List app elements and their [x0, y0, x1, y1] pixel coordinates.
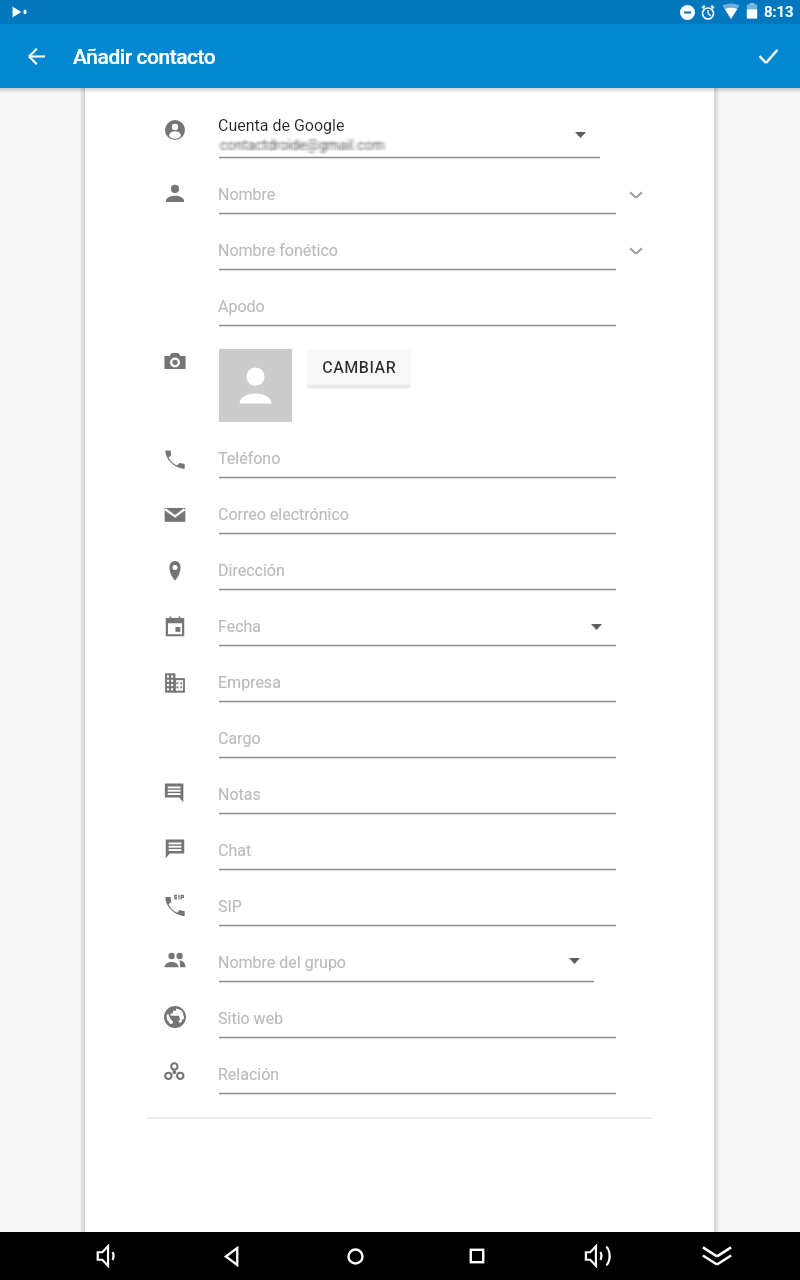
button[interactable]: Save contact — [744, 32, 792, 80]
button[interactable]: Back — [12, 32, 60, 80]
other: Account — [164, 119, 186, 141]
staticText: contactdroide@gmail.com — [220, 137, 385, 153]
staticText: contactdroide@gmail.com — [222, 138, 387, 154]
staticText: CAMBIAR — [322, 358, 396, 377]
staticText: contactdroide@gmail.com — [221, 138, 386, 154]
staticText: Nombre del grupo — [218, 953, 346, 972]
staticText: Nombre fonético — [218, 241, 338, 260]
button[interactable]: Home — [331, 1232, 379, 1280]
staticText: Relación — [218, 1065, 280, 1084]
staticText: Teléfono — [218, 449, 281, 468]
staticText: contactdroide@gmail.com — [220, 138, 385, 154]
staticText: Añadir contacto — [73, 45, 216, 70]
staticText: Cuenta de Google — [218, 116, 345, 135]
staticText: contactdroide@gmail.com — [222, 137, 387, 153]
staticText: contactdroide@gmail.com — [221, 137, 386, 153]
staticText: contactdroide@gmail.com — [217, 137, 382, 153]
staticText: contactdroide@gmail.com — [218, 136, 383, 152]
staticText: contactdroide@gmail.com — [218, 137, 383, 153]
staticText: Sitio web — [218, 1009, 284, 1028]
other: Phone — [164, 448, 186, 470]
other: Notes — [164, 782, 186, 804]
staticText: contactdroide@gmail.com — [218, 138, 383, 154]
staticText: contactdroide@gmail.com — [219, 137, 384, 153]
other: Name — [164, 183, 186, 205]
staticText: Notas — [218, 785, 261, 804]
button[interactable]: Volume up — [575, 1232, 623, 1280]
staticText: contactdroide@gmail.com — [223, 137, 388, 153]
staticText: Chat — [218, 841, 252, 860]
button[interactable]: Volume down — [85, 1232, 133, 1280]
staticText: contactdroide@gmail.com — [220, 138, 385, 154]
staticText: contactdroide@gmail.com — [219, 138, 384, 154]
other: Website — [164, 1006, 186, 1028]
button[interactable]: Contact photo — [219, 349, 292, 422]
button[interactable]: Recent apps — [453, 1232, 501, 1280]
other: Group — [164, 950, 186, 972]
other: Photo — [164, 350, 186, 372]
staticText: Nombre — [218, 185, 276, 204]
staticText: Correo electrónico — [218, 505, 349, 524]
staticText: Dirección — [218, 561, 285, 580]
other: Address — [164, 560, 186, 582]
button[interactable]: Hide navigation bar — [693, 1232, 741, 1280]
other: Relationship — [164, 1062, 186, 1084]
staticText: Fecha — [218, 617, 262, 636]
button[interactable]: CAMBIAR — [306, 349, 411, 385]
staticText: Cargo — [218, 729, 261, 748]
staticText: contactdroide@gmail.com — [222, 136, 387, 152]
other: Email — [164, 504, 186, 526]
staticText: SIP — [218, 897, 242, 916]
staticText: 8:13 — [764, 3, 794, 21]
other: Chat — [164, 838, 186, 860]
other: SIP — [164, 894, 186, 916]
staticText: Empresa — [218, 673, 281, 692]
staticText: Apodo — [218, 297, 265, 316]
staticText: contactdroide@gmail.com — [219, 136, 384, 152]
staticText: contactdroide@gmail.com — [221, 136, 386, 152]
other: Date — [164, 616, 186, 638]
staticText: contactdroide@gmail.com — [220, 136, 385, 152]
other: Organisation — [164, 672, 186, 694]
staticText: contactdroide@gmail.com — [220, 135, 385, 151]
button[interactable]: Back — [209, 1232, 257, 1280]
